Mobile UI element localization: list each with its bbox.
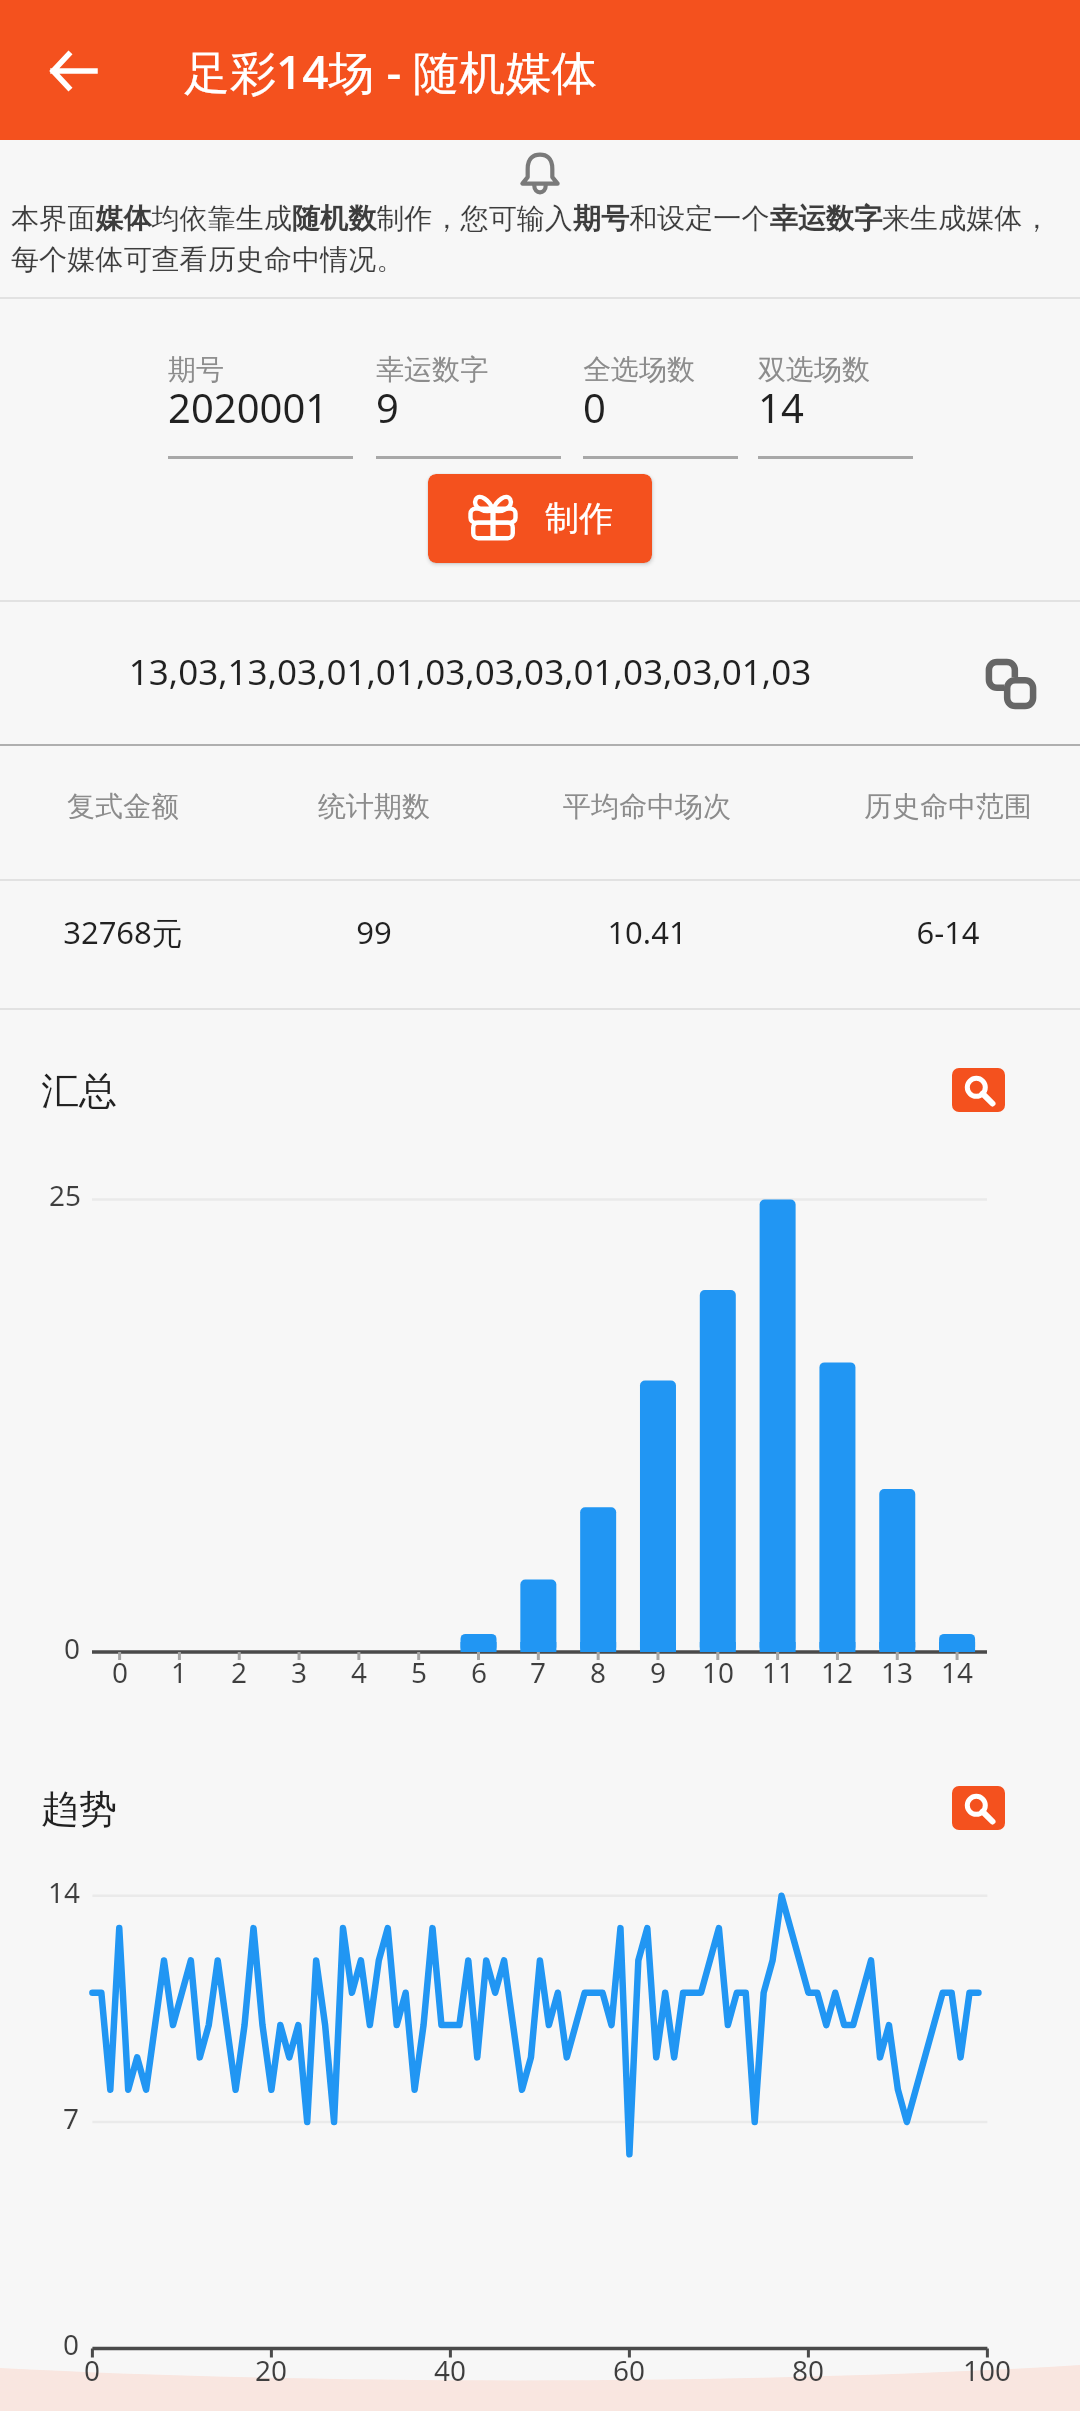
staticText: 汇总 — [41, 1067, 117, 1115]
staticText: 12 — [797, 1653, 877, 1691]
staticText: 1 — [139, 1653, 219, 1691]
staticText: 平均命中场次 — [497, 789, 797, 824]
staticText: 本界面媒体均依靠生成随机数制作，您可输入期号和设定一个幸运数字来生成媒体， 每个… — [11, 201, 1077, 277]
staticText: 6-14 — [798, 911, 1080, 953]
staticText: 99 — [224, 911, 524, 953]
staticText: 100 — [937, 2351, 1037, 2389]
staticText: 13 — [857, 1653, 937, 1691]
staticText: 复式金额 — [0, 789, 273, 824]
staticText: 双选场数 — [758, 352, 870, 387]
staticText: 13,03,13,03,01,01,03,03,03,01,03,03,01,0… — [0, 648, 940, 696]
staticText: 0 — [42, 2351, 142, 2389]
staticText: 40 — [400, 2351, 500, 2389]
button[interactable]: Back — [28, 26, 118, 116]
staticText: 60 — [579, 2351, 679, 2389]
staticText: 6 — [439, 1653, 519, 1691]
staticText: 4 — [319, 1653, 399, 1691]
staticText: 0 — [583, 380, 606, 434]
staticText: 10.41 — [497, 911, 797, 953]
staticText: 幸运数字 — [376, 352, 488, 387]
staticText: 9 — [376, 380, 399, 434]
staticText: 7 — [498, 1653, 578, 1691]
button[interactable]: Search trend — [952, 1786, 1005, 1830]
staticText: 7 — [63, 2099, 80, 2137]
staticText: 25 — [49, 1176, 82, 1214]
staticText: 趋势 — [41, 1785, 117, 1833]
button[interactable]: Search summary — [952, 1068, 1005, 1112]
staticText: 5 — [379, 1653, 459, 1691]
staticText: 全选场数 — [583, 352, 695, 387]
button[interactable]: Copy — [971, 644, 1051, 724]
button[interactable]: 制作 — [428, 474, 652, 563]
staticText: 3 — [259, 1653, 339, 1691]
staticText: 0 — [63, 2325, 80, 2363]
staticText: 2020001 — [168, 380, 329, 434]
staticText: 2 — [199, 1653, 279, 1691]
staticText: 14 — [48, 1873, 81, 1911]
staticText: 制作 — [545, 497, 613, 540]
staticText: 14 — [917, 1653, 997, 1691]
staticText: 11 — [738, 1653, 818, 1691]
staticText: 20 — [221, 2351, 321, 2389]
staticText: 0 — [80, 1653, 160, 1691]
staticText: 期号 — [168, 352, 224, 387]
staticText: 32768元 — [0, 911, 273, 953]
staticText: 9 — [618, 1653, 698, 1691]
staticText: 10 — [678, 1653, 758, 1691]
staticText: 足彩14场 - 随机媒体 — [184, 40, 598, 103]
staticText: 历史命中范围 — [798, 789, 1080, 824]
staticText: 14 — [758, 380, 804, 434]
staticText: 80 — [758, 2351, 858, 2389]
staticText: 0 — [64, 1629, 81, 1667]
staticText: 统计期数 — [224, 789, 524, 824]
staticText: 8 — [558, 1653, 638, 1691]
